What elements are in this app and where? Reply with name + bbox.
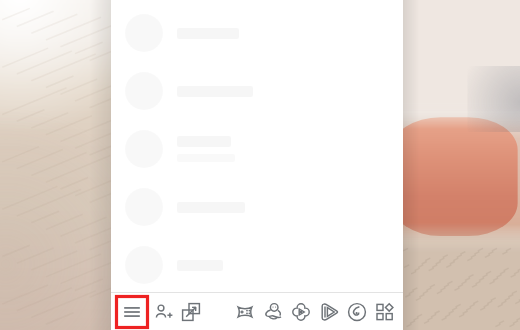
button[interactable]: Character (259, 298, 287, 326)
button[interactable]: Games (231, 298, 259, 326)
button[interactable]: Play (315, 298, 343, 326)
button[interactable]: Menu (115, 295, 149, 329)
button[interactable]: Add person (149, 298, 177, 326)
button[interactable] (111, 294, 403, 330)
button[interactable]: Timer (343, 298, 371, 326)
button[interactable] (111, 236, 403, 294)
button[interactable]: Share (177, 298, 205, 326)
button[interactable]: Apps (371, 298, 399, 326)
button[interactable]: Effects (287, 298, 315, 326)
